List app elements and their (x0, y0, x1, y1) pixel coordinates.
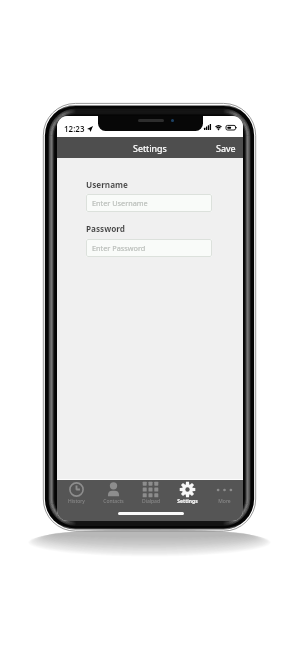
button[interactable]: Enter Username (86, 194, 212, 212)
staticText: 12:23 (64, 123, 85, 134)
button[interactable]: Settings (169, 480, 206, 506)
staticText: Enter Username (92, 198, 148, 208)
staticText: Settings (133, 142, 167, 154)
button[interactable]: Contacts (95, 480, 132, 506)
button[interactable]: Save (208, 137, 243, 158)
staticText: Username (86, 179, 128, 190)
button[interactable]: Dialpad (132, 480, 169, 506)
staticText: More (218, 498, 231, 505)
staticText: Enter Password (92, 243, 146, 253)
button[interactable]: More (206, 480, 243, 506)
button[interactable]: Enter Password (86, 239, 212, 257)
staticText: History (68, 498, 85, 505)
staticText: Contacts (103, 498, 124, 505)
staticText: Dialpad (142, 498, 160, 505)
staticText: Save (216, 142, 236, 154)
staticText: Settings (177, 498, 198, 505)
button[interactable]: History (57, 480, 95, 506)
staticText: Password (86, 223, 126, 234)
